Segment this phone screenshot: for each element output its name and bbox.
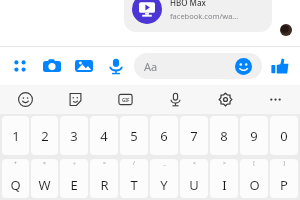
staticText: 2 bbox=[41, 127, 49, 145]
staticText: _ bbox=[163, 160, 166, 167]
staticText: Q bbox=[10, 176, 21, 194]
button[interactable]: 4 bbox=[90, 116, 118, 155]
button[interactable]: More bbox=[250, 85, 300, 114]
staticText: 7 bbox=[190, 127, 198, 145]
staticText: 3 bbox=[70, 127, 78, 145]
button[interactable]: 0 bbox=[270, 116, 298, 155]
staticText: Y bbox=[160, 176, 168, 194]
button[interactable]: 2 bbox=[31, 116, 58, 155]
button[interactable]: + bbox=[2, 159, 29, 198]
button[interactable]: Camera bbox=[40, 54, 64, 78]
button[interactable]: [ bbox=[240, 159, 268, 198]
staticText: [ bbox=[253, 160, 255, 167]
staticText: > bbox=[223, 160, 226, 167]
button[interactable]: 7 bbox=[180, 116, 208, 155]
staticText: facebook.com/wa… bbox=[170, 11, 239, 21]
staticText: U bbox=[189, 176, 199, 194]
button[interactable]: 8 bbox=[210, 116, 238, 155]
staticText: E bbox=[70, 176, 78, 194]
button[interactable]: Stickers bbox=[50, 85, 100, 114]
button[interactable]: / bbox=[120, 159, 148, 198]
button[interactable]: HBO Max bbox=[124, 0, 272, 32]
staticText: 6 bbox=[160, 127, 168, 145]
staticText: 1 bbox=[12, 127, 20, 145]
staticText: + bbox=[14, 160, 17, 167]
button[interactable]: Voice message bbox=[104, 54, 128, 78]
staticText: ÷ bbox=[73, 160, 76, 167]
button[interactable]: < bbox=[180, 159, 208, 198]
staticText: 9 bbox=[250, 127, 258, 145]
staticText: P bbox=[280, 176, 288, 194]
staticText: ] bbox=[283, 160, 285, 167]
staticText: = bbox=[103, 160, 106, 167]
button[interactable]: _ bbox=[150, 159, 178, 198]
staticText: HBO Max bbox=[170, 0, 206, 8]
button[interactable]: Send like bbox=[268, 54, 292, 78]
staticText: R bbox=[100, 176, 109, 194]
button[interactable]: Emoji bbox=[0, 85, 50, 114]
button[interactable]: 9 bbox=[240, 116, 268, 155]
button[interactable]: = bbox=[90, 159, 118, 198]
button[interactable]: 3 bbox=[60, 116, 88, 155]
staticText: I bbox=[222, 176, 227, 194]
button[interactable]: > bbox=[210, 159, 238, 198]
button[interactable]: 5 bbox=[120, 116, 148, 155]
button[interactable]: 6 bbox=[150, 116, 178, 155]
staticText: O bbox=[249, 176, 260, 194]
staticText: / bbox=[133, 160, 135, 167]
staticText: GIF bbox=[122, 97, 130, 103]
button[interactable]: More options bbox=[8, 54, 32, 78]
button[interactable]: Gallery bbox=[72, 54, 96, 78]
staticText: W bbox=[38, 176, 51, 194]
staticText: 5 bbox=[130, 127, 138, 145]
staticText: Aa bbox=[144, 59, 158, 74]
staticText: 0 bbox=[280, 127, 288, 145]
button[interactable]: Emoji bbox=[235, 58, 252, 75]
button[interactable]: ÷ bbox=[60, 159, 88, 198]
staticText: × bbox=[43, 160, 46, 167]
staticText: 4 bbox=[100, 127, 108, 145]
button[interactable]: Aa bbox=[134, 53, 262, 79]
button[interactable]: 1 bbox=[2, 116, 29, 155]
staticText: < bbox=[193, 160, 196, 167]
button[interactable]: Voice input bbox=[150, 85, 200, 114]
staticText: T bbox=[130, 176, 138, 194]
button[interactable]: × bbox=[31, 159, 58, 198]
button[interactable]: Settings bbox=[200, 85, 250, 114]
button[interactable]: GIF bbox=[100, 85, 150, 114]
button[interactable]: ] bbox=[270, 159, 298, 198]
staticText: 8 bbox=[220, 127, 228, 145]
